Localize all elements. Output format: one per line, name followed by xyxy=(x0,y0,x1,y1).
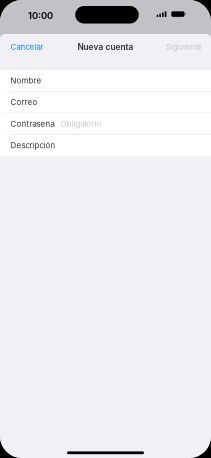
button[interactable]: Cancelar xyxy=(0,35,50,59)
staticText: 10:00 xyxy=(28,10,53,21)
button[interactable]: Contraseña xyxy=(0,113,211,134)
staticText: Obligatorio xyxy=(60,119,101,129)
staticText: Nombre xyxy=(10,76,41,85)
staticText: Descripción xyxy=(10,141,55,150)
staticText: Cancelar xyxy=(10,42,43,52)
staticText: Siguiente xyxy=(166,42,202,52)
staticText: Contraseña xyxy=(10,119,54,129)
button[interactable]: Siguiente xyxy=(159,35,211,59)
button[interactable]: Nombre xyxy=(0,70,211,91)
button[interactable]: Descripción xyxy=(0,135,211,156)
staticText: Correo xyxy=(10,97,37,107)
button[interactable]: Correo xyxy=(0,92,211,113)
staticText: Nueva cuenta xyxy=(77,42,133,52)
